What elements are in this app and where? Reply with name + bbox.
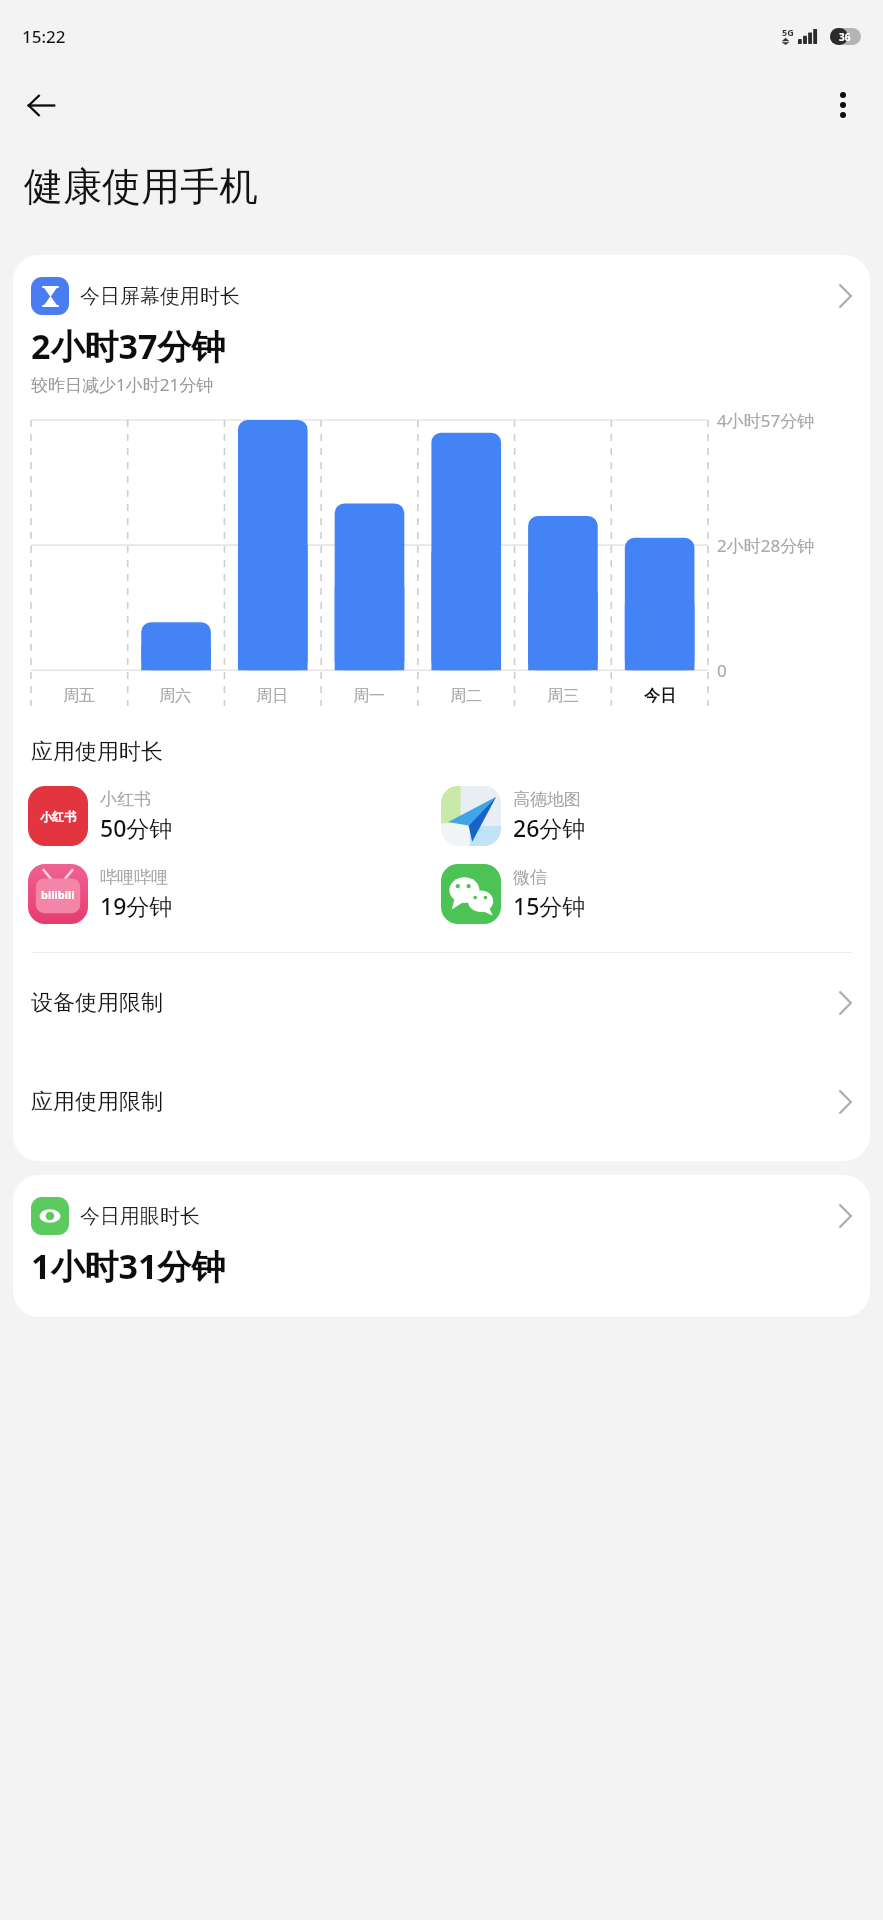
- button[interactable]: 微信: [441, 862, 855, 926]
- button[interactable]: Back: [13, 77, 69, 133]
- staticText: bilibili: [41, 887, 75, 902]
- button[interactable]: 今日用眼时长: [13, 1175, 870, 1317]
- staticText: 36: [839, 30, 851, 44]
- staticText: 4小时57分钟: [717, 409, 815, 432]
- button[interactable]: 小红书: [28, 784, 441, 848]
- button[interactable]: 设备使用限制: [13, 953, 870, 1052]
- staticText: 0: [717, 659, 727, 682]
- staticText: 今日屏幕使用时长: [80, 284, 240, 309]
- staticText: 周六: [159, 686, 191, 706]
- staticText: 15:22: [22, 25, 66, 48]
- staticText: 26分钟: [513, 812, 586, 843]
- staticText: 今日: [644, 686, 676, 706]
- staticText: 2小时28分钟: [717, 534, 815, 557]
- staticText: 15分钟: [513, 890, 586, 921]
- staticText: 应用使用时长: [31, 738, 163, 766]
- staticText: 高德地图: [513, 789, 581, 810]
- staticText: 周二: [450, 686, 482, 706]
- staticText: 较昨日减少1小时21分钟: [31, 373, 214, 396]
- staticText: 1小时31分钟: [31, 1243, 226, 1289]
- staticText: 设备使用限制: [31, 989, 163, 1017]
- staticText: 小红书: [40, 809, 76, 824]
- button[interactable]: 应用使用限制: [13, 1052, 870, 1151]
- button[interactable]: bilibili: [28, 862, 441, 926]
- staticText: 哔哩哔哩: [100, 867, 168, 888]
- staticText: 今日用眼时长: [80, 1204, 200, 1229]
- staticText: 周日: [256, 686, 288, 706]
- staticText: 19分钟: [100, 890, 173, 921]
- staticText: 应用使用限制: [31, 1088, 163, 1116]
- staticText: 周三: [547, 686, 579, 706]
- staticText: 2小时37分钟: [31, 323, 226, 369]
- button[interactable]: 今日屏幕使用时长: [13, 255, 870, 315]
- staticText: 微信: [513, 867, 547, 888]
- staticText: 健康使用手机: [24, 162, 258, 211]
- button[interactable]: 高德地图: [441, 784, 855, 848]
- staticText: 50分钟: [100, 812, 173, 843]
- staticText: 周五: [63, 686, 95, 706]
- staticText: 周一: [353, 686, 385, 706]
- button[interactable]: More options: [817, 79, 869, 131]
- staticText: 小红书: [100, 789, 151, 810]
- staticText: 5G: [782, 26, 794, 38]
